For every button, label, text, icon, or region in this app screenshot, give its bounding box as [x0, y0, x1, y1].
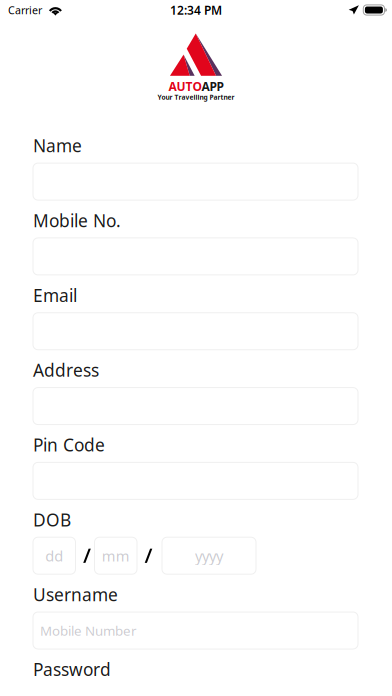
staticText: Email — [33, 284, 77, 307]
staticText: yyyy — [195, 546, 223, 565]
staticText: Your Travelling Partner — [157, 93, 234, 102]
staticText: Mobile Number — [40, 622, 137, 639]
staticText: Mobile No. — [33, 209, 121, 232]
button[interactable]: mm — [94, 537, 137, 574]
staticText: DOB — [33, 508, 71, 531]
staticText: Pin Code — [33, 433, 105, 456]
staticText: Password — [33, 658, 111, 681]
staticText: dd — [45, 546, 63, 565]
button[interactable]: Mobile Number — [33, 612, 358, 649]
staticText: Name — [33, 134, 82, 157]
staticText: Username — [33, 583, 118, 606]
staticText: 12:34 PM — [170, 2, 222, 18]
staticText: Carrier — [8, 3, 42, 17]
staticText: AUTO — [168, 78, 201, 94]
staticText: mm — [102, 546, 130, 565]
button[interactable]: yyyy — [162, 537, 256, 574]
staticText: APP — [201, 78, 223, 94]
button[interactable]: dd — [33, 537, 75, 574]
staticText: Address — [33, 358, 99, 381]
